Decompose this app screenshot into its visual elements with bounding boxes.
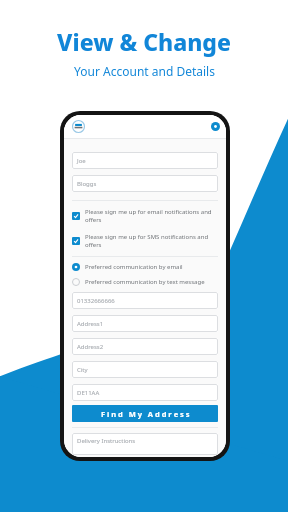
staticText: Preferred communication by email — [85, 263, 183, 271]
button[interactable]: City — [72, 361, 218, 378]
staticText: DE11AA — [77, 389, 100, 397]
staticText: Please sign me up for email notification… — [85, 208, 218, 224]
button[interactable]: Preferred communication by email — [72, 263, 218, 271]
staticText: Bloggs — [77, 180, 97, 188]
button[interactable]: Address1 — [72, 315, 218, 332]
button[interactable]: Please sign me up for SMS notifications … — [72, 233, 218, 249]
button[interactable]: DE11AA — [72, 384, 218, 401]
staticText: Delivery Instructions — [77, 437, 136, 445]
button[interactable]: Bloggs — [72, 175, 218, 192]
button[interactable]: Please sign me up for email notification… — [72, 208, 218, 224]
staticText: Joe — [77, 157, 86, 165]
button[interactable]: Address2 — [72, 338, 218, 355]
button[interactable]: 01332666666 — [72, 292, 218, 309]
staticText: F i n d M y A d d r e s s — [101, 409, 190, 419]
button[interactable]: F i n d M y A d d r e s s — [72, 405, 218, 422]
staticText: Address2 — [77, 343, 104, 351]
button[interactable]: Joe — [72, 152, 218, 169]
staticText: 01332666666 — [77, 297, 115, 305]
staticText: City — [77, 366, 88, 374]
staticText: Please sign me up for SMS notifications … — [85, 233, 218, 249]
button[interactable]: Close — [211, 122, 220, 131]
button[interactable]: Delivery Instructions — [72, 433, 218, 455]
staticText: Preferred communication by text message — [85, 278, 205, 286]
staticText: Your Account and Details — [74, 63, 215, 79]
staticText: View & Change — [57, 26, 231, 57]
staticText: Address1 — [77, 320, 104, 328]
button[interactable]: Preferred communication by text message — [72, 278, 218, 286]
